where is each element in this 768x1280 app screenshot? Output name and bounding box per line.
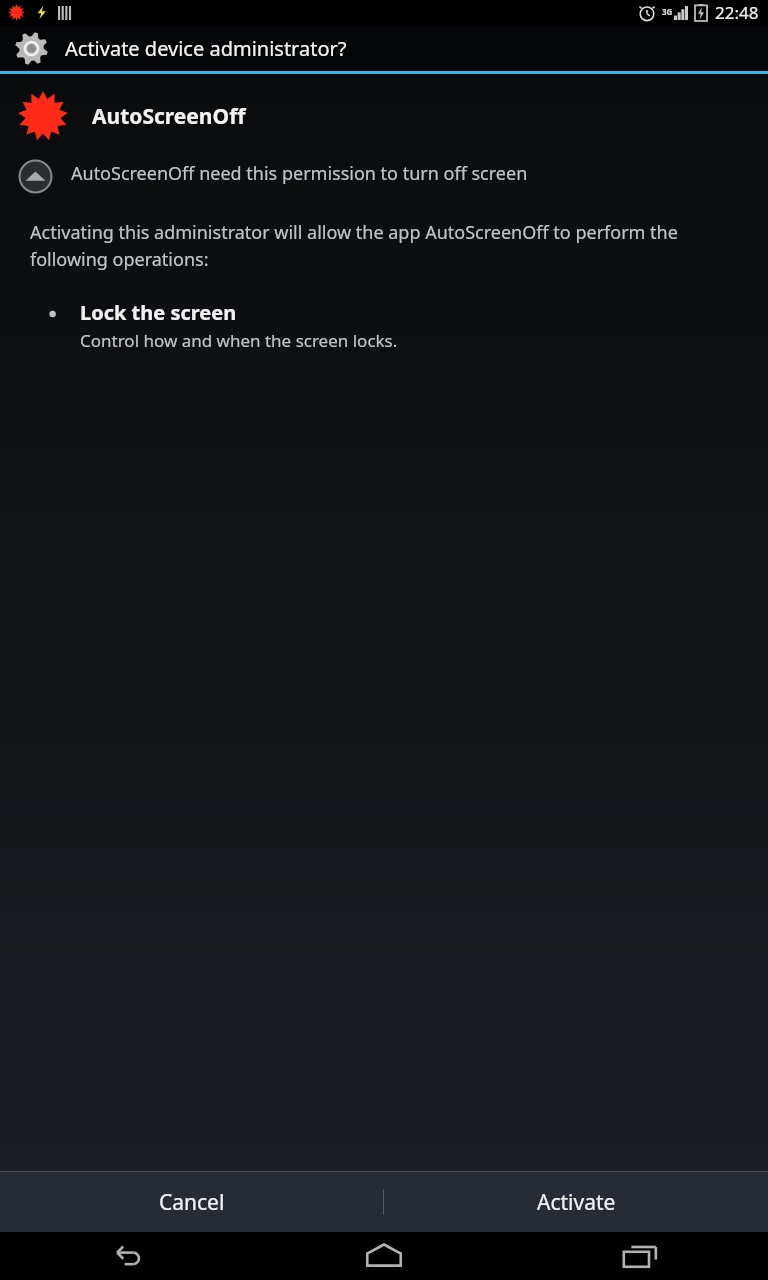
button[interactable]: Home [256,1232,512,1280]
staticText: 22:48 [715,1,759,24]
button[interactable]: Recent apps [512,1232,768,1280]
staticText: Activate device administrator? [65,35,347,62]
staticText: AutoScreenOff [92,102,246,131]
button[interactable]: Activate [384,1172,768,1232]
staticText: AutoScreenOff need this permission to tu… [71,161,528,186]
button[interactable]: Cancel [0,1172,383,1232]
staticText: Activating this administrator will allow… [30,220,728,271]
staticText: Control how and when the screen locks. [80,329,398,352]
staticText: 3G [662,6,673,17]
staticText: Lock the screen [80,299,237,326]
button[interactable]: Collapse details [18,159,744,194]
button[interactable]: Back [0,1232,256,1280]
other: Collapse details [18,159,53,194]
staticText: Cancel [159,1188,225,1217]
staticText: Activate [537,1188,616,1217]
